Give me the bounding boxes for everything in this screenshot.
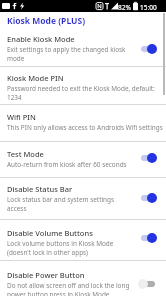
- button[interactable]: [0, 105, 166, 141]
- staticText: Lock status bar and system settings acce…: [7, 195, 115, 213]
- staticText: This PIN only allows access to Androids …: [7, 123, 163, 132]
- staticText: Disable Status Bar: [7, 184, 73, 194]
- staticText: Kiosk Mode PIN: [7, 73, 64, 83]
- staticText: Exit settings to apply the changed kiosk…: [7, 45, 126, 63]
- staticText: 15:00: [140, 3, 157, 12]
- button[interactable]: [0, 220, 166, 260]
- staticText: Kiosk Mode (PLUS): [7, 15, 86, 27]
- staticText: Disable Volume Buttons: [7, 228, 93, 238]
- button[interactable]: [0, 67, 166, 104]
- button[interactable]: [0, 261, 166, 296]
- button[interactable]: [0, 30, 166, 66]
- staticText: Lock volume buttons in Kiosk Mode (doesn…: [7, 239, 114, 257]
- staticText: Password needed to exit the Kiosk Mode, …: [7, 84, 155, 102]
- staticText: Auto-return from kiosk after 60 seconds: [7, 160, 127, 169]
- staticText: Do not allow screen off and lock the lon…: [7, 281, 130, 296]
- staticText: Wifi PIN: [7, 112, 36, 122]
- staticText: Test Mode: [7, 149, 44, 159]
- staticText: 82%: [118, 3, 131, 12]
- staticText: Disable Power Button: [7, 270, 85, 280]
- button[interactable]: [0, 142, 166, 177]
- staticText: Enable Kiosk Mode: [7, 34, 75, 44]
- button[interactable]: [0, 178, 166, 219]
